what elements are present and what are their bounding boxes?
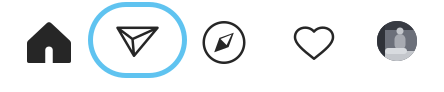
button[interactable]: Activity xyxy=(271,0,357,89)
button[interactable]: Direct messages xyxy=(88,0,187,86)
button[interactable]: Explore xyxy=(181,0,267,88)
button[interactable]: Profile xyxy=(354,0,440,87)
button[interactable]: Home xyxy=(5,0,93,88)
